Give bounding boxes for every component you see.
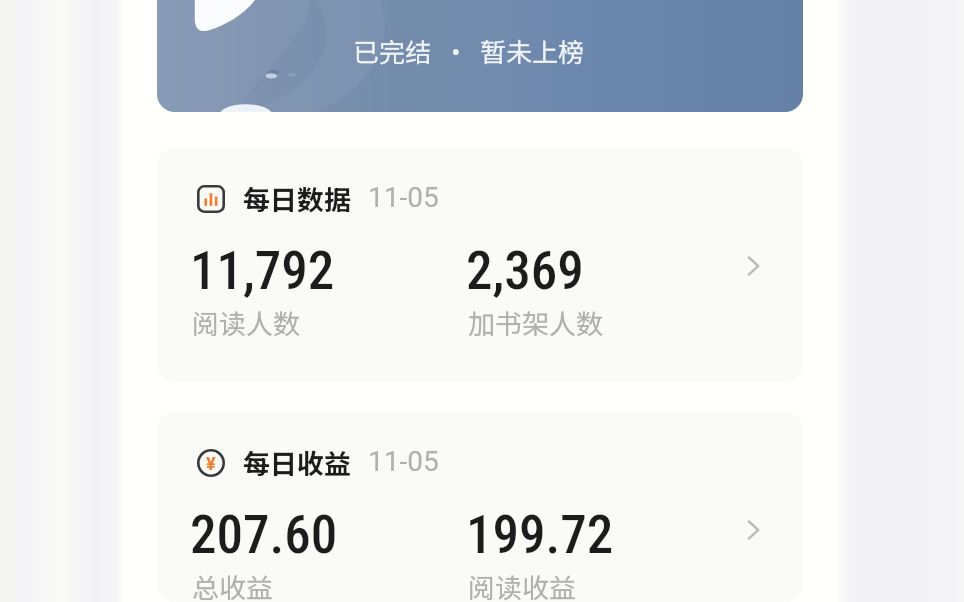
button[interactable]: 查看详情 — [731, 508, 775, 552]
button[interactable]: 已完结 · 暂未上榜 — [157, 0, 803, 112]
staticText: 11-05 — [368, 445, 439, 478]
staticText: 阅读收益 — [468, 567, 576, 602]
button[interactable]: 查看详情 — [731, 244, 775, 288]
staticText: 207.60 — [190, 504, 338, 566]
staticText: 加书架人数 — [468, 303, 603, 342]
staticText: 每日收益 — [243, 443, 351, 482]
staticText: 2,369 — [466, 240, 584, 302]
staticText: ¥ — [206, 453, 216, 474]
staticText: 总收益 — [192, 567, 273, 602]
button[interactable]: 每日数据 — [157, 148, 803, 382]
staticText: 11,792 — [190, 240, 335, 302]
staticText: 每日数据 — [243, 179, 351, 218]
staticText: 11-05 — [368, 181, 439, 214]
staticText: 199.72 — [466, 504, 614, 566]
staticText: 已完结 · 暂未上榜 — [353, 32, 585, 70]
button[interactable]: ¥ — [157, 412, 803, 602]
staticText: 阅读人数 — [192, 303, 300, 342]
